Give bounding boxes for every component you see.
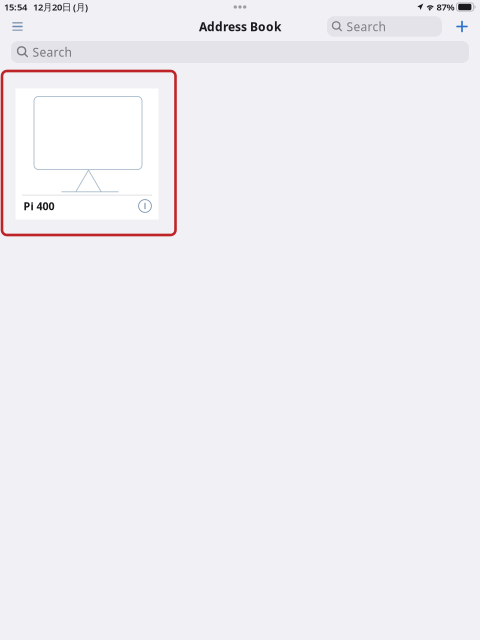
- button[interactable]: Pi 400: [15, 88, 158, 219]
- staticText: 12月20日 (月): [27, 1, 88, 13]
- button[interactable]: Add: [452, 15, 472, 37]
- staticText: Search: [346, 18, 385, 34]
- staticText: Address Book: [199, 18, 281, 34]
- staticText: 87%: [436, 1, 454, 13]
- button[interactable]: Info: [138, 199, 151, 212]
- button[interactable]: Search: [11, 41, 469, 63]
- button[interactable]: Menu: [6, 14, 29, 38]
- staticText: 15:54: [4, 1, 27, 13]
- staticText: Search: [32, 44, 71, 60]
- staticText: Pi 400: [23, 199, 54, 213]
- button[interactable]: Search: [327, 16, 442, 37]
